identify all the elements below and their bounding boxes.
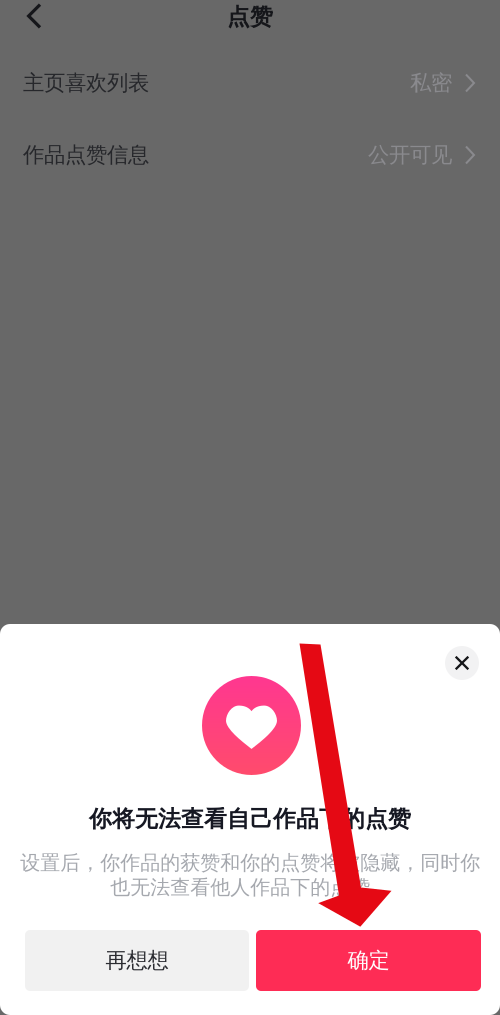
button[interactable]: Back <box>10 0 58 32</box>
button[interactable]: 确定 <box>256 930 481 991</box>
staticText: 公开可见 <box>368 142 452 168</box>
button[interactable]: 作品点赞信息 <box>0 119 500 191</box>
staticText: 设置后，你作品的获赞和你的点赞将被隐藏，同时你也无法查看他人作品下的点赞。 <box>20 850 480 899</box>
staticText: 私密 <box>410 70 452 96</box>
staticText: 主页喜欢列表 <box>23 70 149 96</box>
staticText: 确定 <box>347 947 389 974</box>
staticText: 点赞 <box>227 3 273 31</box>
button[interactable]: Close <box>445 646 479 680</box>
button[interactable]: 主页喜欢列表 <box>0 47 500 119</box>
staticText: 你将无法查看自己作品下的点赞 <box>89 805 411 833</box>
staticText: 作品点赞信息 <box>23 142 149 168</box>
staticText: 再想想 <box>105 947 168 974</box>
button[interactable]: 再想想 <box>25 930 249 991</box>
